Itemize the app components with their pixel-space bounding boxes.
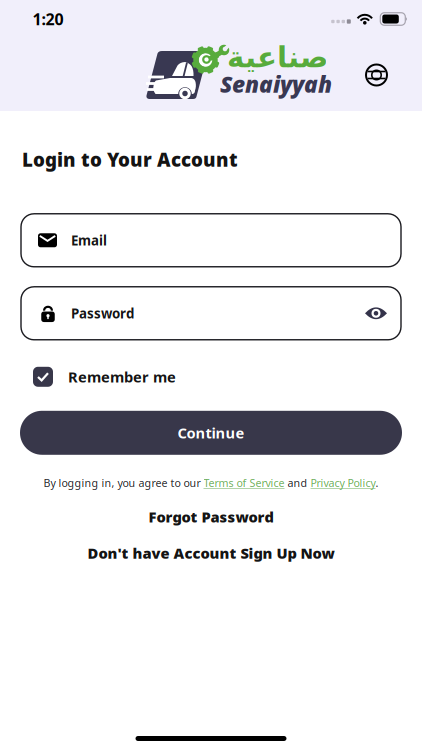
staticText: Continue xyxy=(177,423,244,443)
button[interactable]: Terms of Service xyxy=(203,476,284,490)
staticText: Login to Your Account xyxy=(22,147,238,172)
staticText: Privacy Policy xyxy=(310,476,375,490)
button[interactable]: Remember me xyxy=(33,367,176,387)
button[interactable]: Language xyxy=(365,63,388,86)
button[interactable]: Show password xyxy=(365,306,401,320)
staticText: Don't have Account Sign Up Now xyxy=(87,543,334,563)
staticText: 1:20 xyxy=(32,8,63,30)
button[interactable]: Privacy Policy xyxy=(310,476,375,490)
staticText: Terms of Service xyxy=(203,476,284,490)
staticText: and xyxy=(284,476,310,490)
staticText: By logging in, you agree to our xyxy=(43,476,203,490)
button[interactable]: Password xyxy=(21,287,401,340)
staticText: Forgot Password xyxy=(148,507,273,526)
button[interactable]: Don't have Account Sign Up Now xyxy=(87,543,334,563)
staticText: Password xyxy=(71,304,134,322)
staticText: Email xyxy=(71,231,107,249)
staticText: Remember me xyxy=(68,367,176,387)
button[interactable]: Email xyxy=(21,214,401,267)
button[interactable]: Forgot Password xyxy=(148,507,273,526)
staticText: صناعية xyxy=(226,40,327,74)
button[interactable]: Continue xyxy=(20,411,402,455)
staticText: . xyxy=(375,476,378,490)
staticText: Senaiyyah xyxy=(220,69,332,99)
